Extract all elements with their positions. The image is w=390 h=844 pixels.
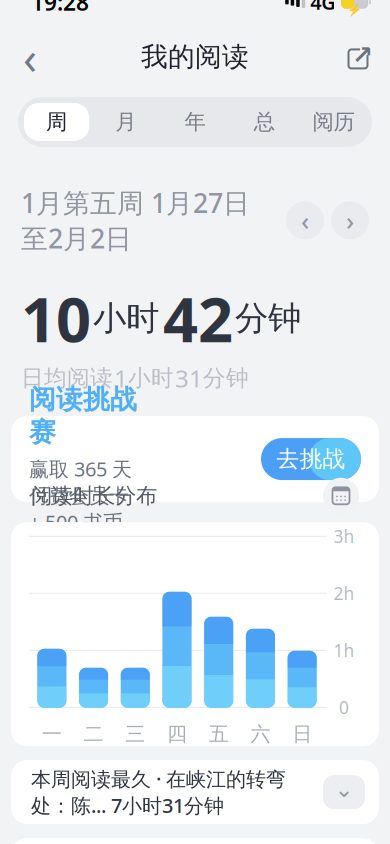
staticText: 阅历	[312, 109, 354, 135]
staticText: 1h	[333, 639, 354, 662]
staticText: 日	[292, 722, 312, 746]
staticText: ›	[346, 203, 354, 237]
staticText: 四	[167, 722, 187, 746]
button[interactable]: 总	[230, 100, 299, 144]
button[interactable]: 周	[22, 100, 91, 144]
staticText: 我的阅读	[141, 40, 249, 73]
staticText: 小时	[128, 364, 174, 392]
staticText: 3h	[333, 525, 354, 548]
button[interactable]: 本周阅读最久 · 在峡江的转弯处：陈... 7小时31分钟	[11, 760, 379, 824]
button[interactable]: 月	[91, 100, 160, 144]
staticText: 32⚡	[347, 0, 362, 17]
button[interactable]: Back	[8, 35, 52, 79]
staticText: 1月第五周 1月27日至2月2日	[21, 185, 250, 256]
staticText: 月	[115, 109, 136, 135]
button[interactable]: 年	[160, 100, 230, 144]
button[interactable]: Share	[338, 35, 382, 79]
staticText: 一	[42, 722, 62, 746]
staticText: 2h	[333, 582, 354, 605]
button[interactable]: Next week	[331, 201, 369, 239]
staticText: ↗	[352, 41, 373, 69]
staticText: 本周阅读最久 · 在峡江的转弯处：陈... 7小时31分钟	[31, 765, 286, 819]
staticText: 二	[84, 722, 104, 746]
staticText: 周	[46, 109, 67, 135]
staticText: 10	[21, 278, 91, 359]
button[interactable]: 阅读挑战赛	[11, 416, 379, 502]
staticText: 去挑战	[276, 445, 345, 473]
staticText: 分钟	[235, 298, 301, 339]
button[interactable]: 阅历	[299, 100, 368, 144]
staticText: 总	[254, 109, 275, 135]
staticText: 阅读时长分布	[31, 483, 157, 509]
button[interactable]: Previous week	[286, 201, 324, 239]
staticText: 31	[175, 362, 203, 394]
staticText: 年	[184, 109, 205, 135]
staticText: 五	[209, 722, 229, 746]
staticText: 42	[163, 278, 233, 359]
staticText: 分钟	[203, 364, 249, 392]
staticText: ‹	[23, 27, 37, 87]
staticText: 19:28	[31, 0, 89, 17]
staticText: 三	[125, 722, 145, 746]
staticText: 小时	[93, 298, 159, 339]
staticText: 4G	[310, 0, 336, 15]
button[interactable]: Choose date	[323, 478, 359, 514]
staticText: 六	[250, 722, 270, 746]
staticText: 赢取 365 天付费会员卡 + 500 书币	[29, 455, 132, 535]
staticText: 周四阅读最久 · 2小时39分钟	[63, 775, 327, 803]
staticText: 阅读挑战赛	[29, 383, 137, 448]
staticText: 1	[114, 362, 128, 394]
staticText: ‹	[301, 203, 309, 237]
staticText: 0	[339, 696, 349, 719]
staticText: ⌄	[334, 776, 353, 802]
staticText: 日均阅读	[21, 364, 113, 392]
